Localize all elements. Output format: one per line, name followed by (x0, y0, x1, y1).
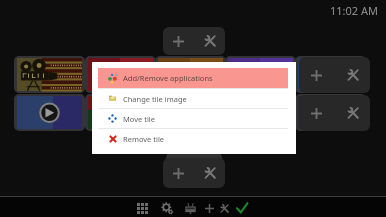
button[interactable]: Change tile image (98, 89, 288, 108)
button[interactable]: Tile settings (194, 158, 225, 188)
button[interactable]: Add tile (299, 57, 334, 93)
button[interactable]: Add tile (299, 95, 334, 131)
button[interactable]: Done (232, 198, 251, 217)
button[interactable] (158, 96, 223, 129)
button[interactable]: Settings (155, 198, 179, 217)
button[interactable]: Move tile (98, 109, 288, 128)
button[interactable]: Display (179, 198, 202, 217)
button[interactable] (298, 96, 363, 129)
staticText: 11:02 AM (330, 3, 378, 18)
button[interactable]: Tile settings (335, 95, 370, 131)
staticText: Add/Remove applications (123, 73, 213, 83)
button[interactable] (228, 58, 293, 91)
button[interactable] (88, 58, 153, 91)
button[interactable]: Apps (129, 198, 155, 217)
button[interactable]: Add tile (163, 158, 194, 188)
button[interactable] (88, 96, 153, 129)
button[interactable]: Tools (217, 198, 232, 217)
staticText: Remove tile (123, 134, 165, 144)
button[interactable]: Tile settings (194, 27, 225, 55)
button[interactable]: Tile settings (335, 57, 370, 93)
button[interactable]: Remove tile (98, 129, 288, 148)
button[interactable]: Add (202, 198, 217, 217)
button[interactable] (17, 96, 82, 129)
button[interactable] (17, 58, 82, 91)
staticText: Change tile image (123, 94, 187, 104)
button[interactable]: Add tile (163, 27, 194, 55)
button[interactable]: Add/Remove applications (98, 68, 288, 88)
staticText: Move tile (123, 114, 155, 124)
button[interactable] (158, 58, 223, 91)
button[interactable] (228, 96, 293, 129)
button[interactable] (298, 58, 363, 91)
